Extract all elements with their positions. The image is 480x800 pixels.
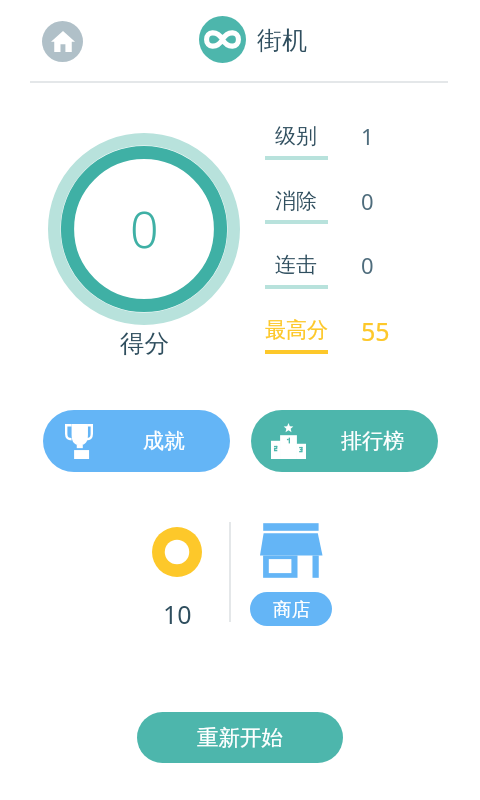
staticText: 10	[163, 597, 192, 626]
staticText: 0	[361, 250, 374, 280]
staticText: 0	[130, 195, 159, 263]
staticText: 1	[361, 121, 374, 151]
button[interactable]: Shop	[258, 521, 324, 579]
staticText: 排行榜	[341, 428, 404, 454]
staticText: 级别	[275, 123, 317, 149]
staticText: 55	[361, 314, 390, 346]
button[interactable]: 重新开始	[137, 712, 343, 763]
button[interactable]: Home	[42, 21, 83, 62]
staticText: 消除	[275, 188, 317, 214]
staticText: 成就	[143, 428, 185, 454]
staticText: 重新开始	[197, 724, 283, 751]
staticText: 连击	[275, 252, 317, 278]
staticText: 最高分	[265, 317, 328, 343]
button[interactable]: Coins: 10	[139, 522, 216, 626]
staticText: 得分	[120, 328, 169, 359]
button[interactable]: 商店	[250, 592, 332, 626]
button[interactable]: 排行榜	[251, 410, 438, 472]
staticText: 商店	[273, 598, 310, 621]
button[interactable]: 成就	[43, 410, 230, 472]
staticText: 0	[361, 186, 374, 216]
staticText: 街机	[257, 25, 307, 56]
